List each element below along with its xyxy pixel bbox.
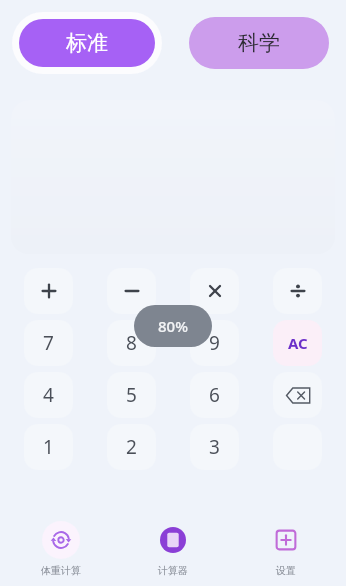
staticText: 3 <box>209 434 220 460</box>
staticText: 7 <box>43 330 54 356</box>
button[interactable]: 8 <box>107 320 156 366</box>
button[interactable]: Backspace <box>273 372 322 418</box>
button[interactable] <box>190 268 239 314</box>
button[interactable]: 体重计算 <box>9 520 113 577</box>
button[interactable]: 2 <box>107 424 156 470</box>
staticText: 5 <box>126 382 137 408</box>
staticText: 科学 <box>238 30 280 56</box>
other: 计算器 <box>154 521 192 559</box>
staticText: 计算器 <box>158 564 188 577</box>
staticText: 1 <box>43 434 54 460</box>
button[interactable]: AC <box>273 320 322 366</box>
button[interactable]: 科学 <box>189 17 329 69</box>
button[interactable] <box>24 268 73 314</box>
button[interactable] <box>107 268 156 314</box>
staticText: 体重计算 <box>41 564 81 577</box>
staticText: 8 <box>126 330 137 356</box>
staticText: 80% <box>158 316 188 336</box>
button[interactable] <box>273 268 322 314</box>
button[interactable]: 标准 <box>19 19 155 67</box>
staticText: AC <box>288 333 308 353</box>
staticText: 9 <box>209 330 220 356</box>
button[interactable]: 计算器 <box>121 520 225 577</box>
button[interactable]: 设置 <box>234 520 338 577</box>
staticText: 设置 <box>276 564 296 577</box>
button[interactable]: 3 <box>190 424 239 470</box>
staticText: 标准 <box>66 30 108 56</box>
other: 体重计算 <box>42 521 80 559</box>
button[interactable]: 5 <box>107 372 156 418</box>
staticText: 4 <box>43 382 54 408</box>
staticText: 6 <box>209 382 220 408</box>
staticText: 2 <box>126 434 137 460</box>
button[interactable]: 1 <box>24 424 73 470</box>
button[interactable]: 6 <box>190 372 239 418</box>
button[interactable]: 9 <box>190 320 239 366</box>
button[interactable]: 4 <box>24 372 73 418</box>
button[interactable]: 7 <box>24 320 73 366</box>
other: 设置 <box>267 521 305 559</box>
